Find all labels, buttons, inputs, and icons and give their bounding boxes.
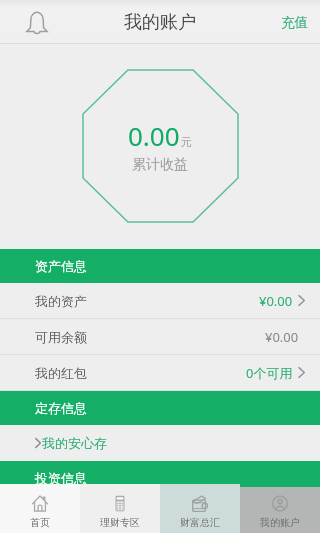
- staticText: 0个可用: [246, 364, 293, 382]
- button[interactable]: 我的红包: [0, 355, 320, 390]
- staticText: 财富总汇: [180, 516, 220, 529]
- staticText: 我的安心存: [42, 435, 107, 451]
- staticText: 可用余额: [35, 329, 87, 345]
- staticText: ¥0.00: [265, 328, 299, 346]
- staticText: 资产信息: [35, 258, 87, 274]
- staticText: 我的账户: [260, 516, 300, 529]
- staticText: 投资信息: [35, 470, 87, 486]
- staticText: 充值: [281, 14, 308, 31]
- button[interactable]: 充值: [267, 0, 320, 44]
- staticText: 理财专区: [100, 516, 140, 529]
- staticText: 定存信息: [35, 400, 87, 416]
- staticText: ¥0.00: [259, 292, 293, 310]
- staticText: 我的账户: [124, 11, 196, 34]
- button[interactable]: 我的安心存: [0, 425, 320, 461]
- staticText: 0.00: [128, 118, 180, 153]
- staticText: 我的资产: [35, 293, 87, 309]
- button[interactable]: 财富总汇: [160, 484, 240, 533]
- staticText: 首页: [30, 516, 50, 529]
- button[interactable]: 我的资产: [0, 283, 320, 318]
- button[interactable]: 首页: [0, 484, 80, 533]
- button[interactable]: Notifications: [0, 0, 62, 44]
- staticText: 元: [181, 135, 192, 149]
- button[interactable]: 理财专区: [80, 484, 160, 533]
- button[interactable]: 我的账户: [240, 484, 320, 533]
- staticText: 我的红包: [35, 365, 87, 381]
- button[interactable]: 可用余额: [0, 319, 320, 354]
- staticText: 累计收益: [132, 156, 188, 174]
